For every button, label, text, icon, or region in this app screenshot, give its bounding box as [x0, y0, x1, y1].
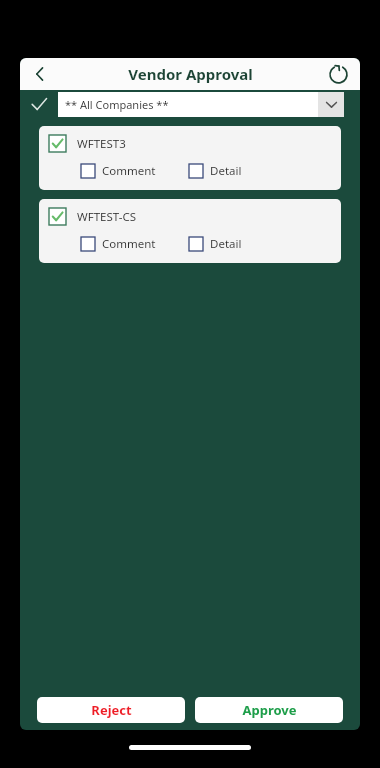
staticText: Comment: [102, 236, 156, 252]
staticText: ** All Companies **: [65, 97, 318, 112]
staticText: Approve: [242, 701, 297, 719]
button[interactable]: Selected WFTEST-CS: [39, 199, 341, 263]
button[interactable]: Select all: [20, 90, 58, 118]
button[interactable]: Detail: [189, 163, 242, 179]
staticText: Vendor Approval: [128, 64, 253, 84]
staticText: Comment: [102, 163, 156, 179]
button[interactable]: Comment: [81, 163, 156, 179]
button[interactable]: Selected WFTEST3: [49, 135, 66, 152]
button[interactable]: Back: [20, 58, 60, 90]
button[interactable]: Selected WFTEST3: [39, 126, 341, 190]
staticText: WFTEST3: [77, 136, 126, 152]
staticText: WFTEST-CS: [77, 209, 136, 225]
staticText: Reject: [91, 701, 132, 719]
button[interactable]: Selected WFTEST-CS: [49, 208, 66, 225]
button[interactable]: Approve: [195, 697, 343, 723]
button[interactable]: Refresh: [316, 58, 360, 90]
staticText: Detail: [210, 236, 242, 252]
button[interactable]: Reject: [37, 697, 185, 723]
button[interactable]: Comment: [81, 236, 156, 252]
staticText: Detail: [210, 163, 242, 179]
button[interactable]: Detail: [189, 236, 242, 252]
button[interactable]: ** All Companies **: [58, 92, 344, 117]
